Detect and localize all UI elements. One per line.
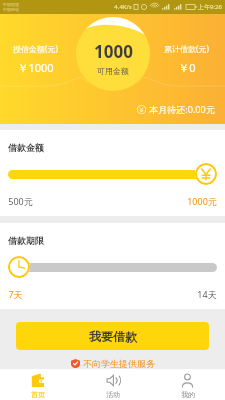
button[interactable]: 借款期限滑块	[8, 256, 217, 278]
staticText: 我要借款	[89, 329, 137, 344]
staticText: 借款金额	[8, 142, 44, 153]
button[interactable]: 借款金额滑块	[8, 163, 217, 185]
staticText: ￥1000	[17, 60, 54, 75]
staticText: 上午9:26	[198, 3, 222, 11]
staticText: 我的	[181, 390, 195, 399]
button[interactable]: 我的	[150, 369, 225, 400]
button[interactable]: 我要借款	[16, 322, 209, 350]
staticText: 1000	[94, 40, 133, 63]
other: 本月待还	[137, 105, 146, 114]
button[interactable]: 活动	[75, 369, 150, 400]
staticText: 14天	[197, 288, 217, 300]
staticText: 7天	[8, 288, 23, 300]
staticText: 借款期限	[8, 235, 44, 246]
staticText: 不向学生提供服务	[83, 358, 155, 369]
staticText: 本月待还:0.00元	[149, 103, 215, 115]
staticText: 活动	[106, 390, 120, 399]
staticText: 1000元	[187, 195, 217, 207]
button[interactable]: 本月待还	[137, 103, 215, 115]
staticText: ￥0	[178, 60, 196, 75]
staticText: 500元	[8, 195, 33, 207]
staticText: 可用金额	[97, 66, 129, 76]
staticText: 中国移动	[3, 7, 19, 12]
staticText: 4.4K/s	[114, 3, 132, 11]
staticText: 授信金额(元)	[13, 43, 58, 54]
button[interactable]: 首页	[0, 369, 75, 400]
staticText: 首页	[31, 390, 45, 399]
staticText: 中国联通	[3, 2, 19, 7]
staticText: 累计借款(元)	[164, 43, 209, 54]
